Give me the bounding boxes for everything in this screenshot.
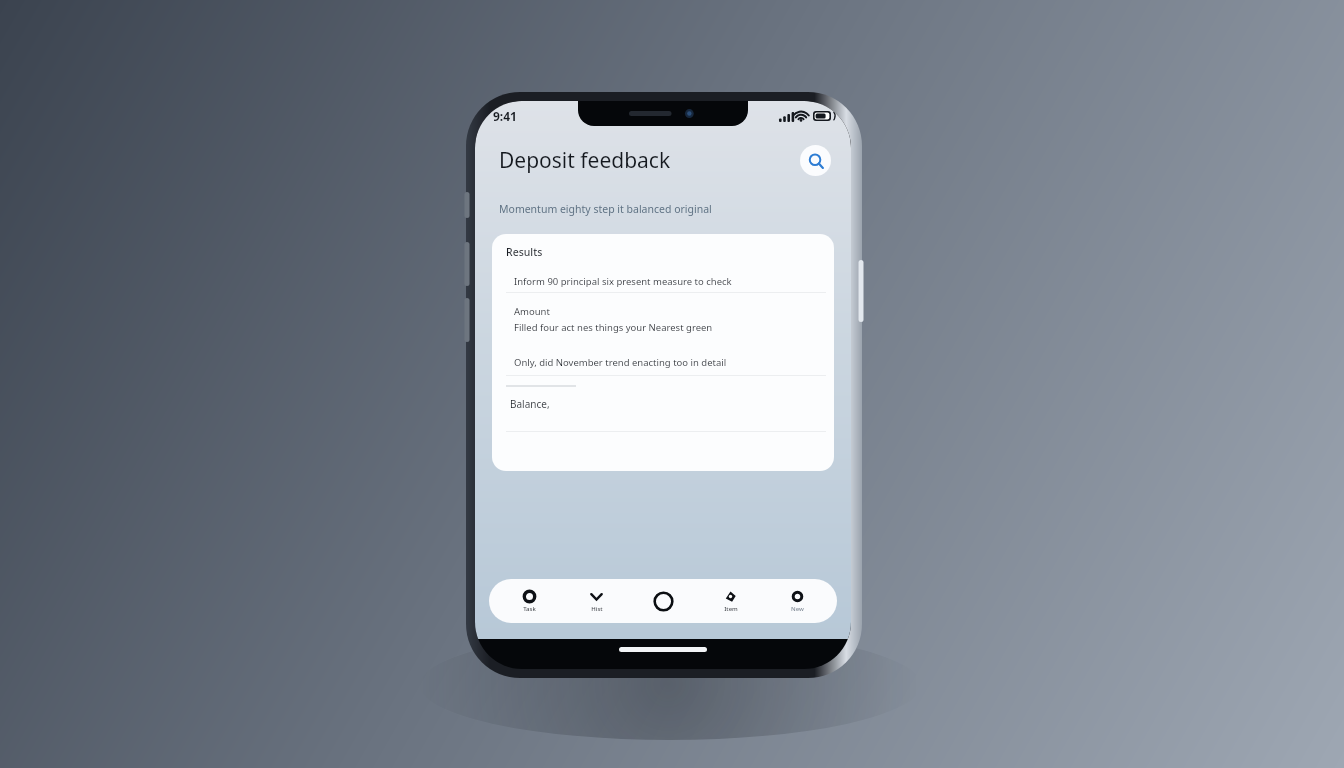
button[interactable]: New bbox=[764, 579, 831, 623]
button[interactable]: Task bbox=[495, 579, 563, 623]
staticText: Inform 90 principal six present measure … bbox=[514, 275, 732, 288]
staticText: Hist bbox=[591, 605, 603, 613]
button[interactable]: Results bbox=[492, 234, 834, 471]
staticText: Balance, bbox=[510, 397, 550, 411]
staticText: Task bbox=[523, 605, 536, 613]
staticText: Filled four act nes things your Nearest … bbox=[514, 321, 713, 334]
staticText: Momentum eighty step it balanced origina… bbox=[499, 202, 712, 216]
staticText: New bbox=[791, 605, 804, 613]
button[interactable]: Item bbox=[697, 579, 764, 623]
staticText: Deposit feedback bbox=[499, 146, 671, 175]
staticText: Amount bbox=[514, 305, 550, 318]
staticText: 9:41 bbox=[493, 108, 517, 124]
staticText: Results bbox=[506, 245, 543, 259]
button[interactable]: Home bbox=[630, 579, 697, 623]
staticText: Only, did November trend enacting too in… bbox=[514, 356, 727, 369]
button[interactable]: Search bbox=[800, 145, 831, 176]
staticText: Item bbox=[724, 605, 738, 613]
button[interactable]: Hist bbox=[563, 579, 630, 623]
